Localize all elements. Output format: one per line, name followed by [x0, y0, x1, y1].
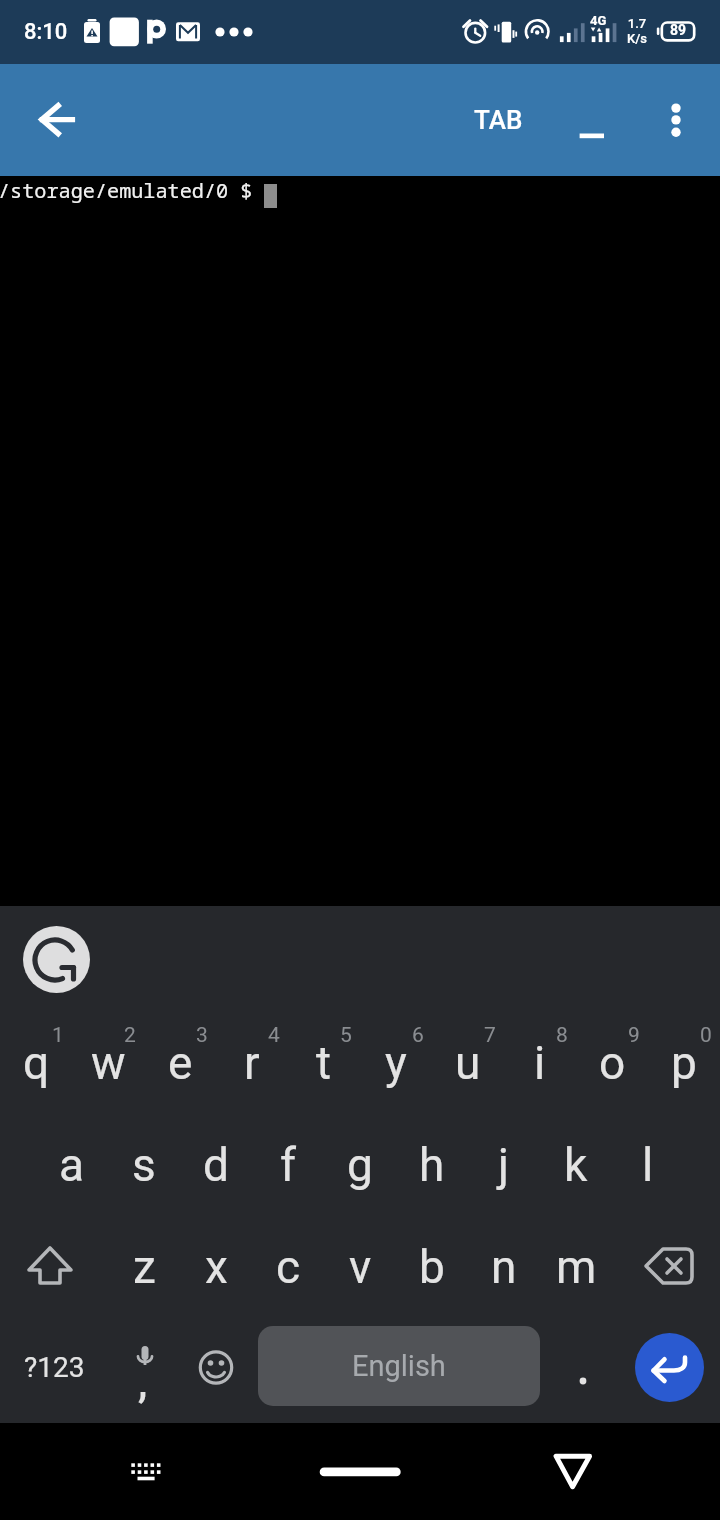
staticText: h: [419, 1138, 445, 1192]
staticText: q: [23, 1036, 50, 1090]
button[interactable]: v: [324, 1208, 396, 1310]
staticText: ?123: [24, 1351, 85, 1384]
button[interactable]: k: [540, 1106, 612, 1208]
staticText: 6: [400, 1023, 436, 1048]
button[interactable]: n: [468, 1208, 540, 1310]
staticText: 8: [544, 1023, 580, 1048]
staticText: k: [564, 1138, 588, 1192]
button[interactable]: Minimize: [562, 90, 624, 150]
button[interactable]: x: [180, 1208, 252, 1310]
button[interactable]: Back: [545, 1444, 601, 1506]
button[interactable]: c: [252, 1208, 324, 1310]
button[interactable]: More options: [645, 90, 707, 150]
button[interactable]: 1: [0, 1004, 72, 1106]
staticText: j: [498, 1138, 510, 1192]
button[interactable]: l: [612, 1106, 684, 1208]
button[interactable]: g: [324, 1106, 396, 1208]
button[interactable]: 9: [576, 1004, 648, 1106]
staticText: o: [599, 1036, 626, 1090]
button[interactable]: Backspace: [612, 1208, 720, 1310]
staticText: u: [455, 1036, 481, 1090]
button[interactable]: Grammarly keyboard: [23, 926, 90, 993]
staticText: p: [671, 1036, 697, 1090]
button[interactable]: Voice input: [108, 1308, 180, 1410]
staticText: 1.7 K/s: [623, 16, 651, 46]
staticText: 3: [184, 1023, 220, 1048]
button[interactable]: 4: [216, 1004, 288, 1106]
staticText: 1: [40, 1023, 76, 1048]
staticText: y: [385, 1036, 407, 1090]
staticText: d: [203, 1138, 229, 1192]
staticText: v: [349, 1240, 372, 1294]
button[interactable]: TAB: [450, 90, 546, 150]
button[interactable]: 7: [432, 1004, 504, 1106]
button[interactable]: English: [258, 1326, 540, 1406]
button[interactable]: z: [108, 1208, 180, 1310]
button[interactable]: Period: [548, 1308, 620, 1410]
button[interactable]: b: [396, 1208, 468, 1310]
button[interactable]: 8: [504, 1004, 576, 1106]
staticText: 8:10: [24, 19, 68, 45]
staticText: 4: [256, 1023, 292, 1048]
button[interactable]: m: [540, 1208, 612, 1310]
button[interactable]: Shift: [0, 1208, 108, 1310]
button[interactable]: 2: [72, 1004, 144, 1106]
staticText: s: [132, 1138, 156, 1192]
button[interactable]: Home: [312, 1460, 408, 1510]
button[interactable]: 6: [360, 1004, 432, 1106]
button[interactable]: Hide keyboard: [110, 1446, 182, 1508]
button[interactable]: a: [36, 1106, 108, 1208]
button[interactable]: 3: [144, 1004, 216, 1106]
button[interactable]: 0: [648, 1004, 720, 1106]
staticText: b: [419, 1240, 445, 1294]
staticText: 9: [616, 1023, 652, 1048]
button[interactable]: 5: [288, 1004, 360, 1106]
staticText: m: [556, 1240, 597, 1294]
button[interactable]: h: [396, 1106, 468, 1208]
staticText: 7: [472, 1023, 508, 1048]
button[interactable]: ?123: [0, 1316, 108, 1418]
staticText: 4G: [590, 13, 607, 28]
button[interactable]: j: [468, 1106, 540, 1208]
staticText: 2: [112, 1023, 148, 1048]
staticText: a: [59, 1138, 85, 1192]
staticText: 89: [664, 22, 692, 38]
staticText: c: [276, 1240, 301, 1294]
button[interactable]: d: [180, 1106, 252, 1208]
staticText: TAB: [474, 105, 523, 135]
staticText: z: [133, 1240, 156, 1294]
staticText: English: [352, 1349, 446, 1383]
button[interactable]: s: [108, 1106, 180, 1208]
staticText: f: [280, 1138, 296, 1192]
staticText: n: [491, 1240, 517, 1294]
staticText: t: [316, 1036, 332, 1090]
staticText: 5: [328, 1023, 364, 1048]
staticText: l: [642, 1138, 654, 1192]
button[interactable]: Emoji: [180, 1308, 252, 1410]
button[interactable]: f: [252, 1106, 324, 1208]
staticText: e: [168, 1036, 193, 1090]
staticText: 0: [688, 1023, 720, 1048]
staticText: g: [347, 1138, 373, 1192]
button[interactable]: Back: [12, 88, 76, 152]
staticText: x: [205, 1240, 228, 1294]
staticText: ,: [138, 1358, 148, 1407]
button[interactable]: Enter: [635, 1333, 704, 1402]
staticText: /storage/emulated/0 $: [0, 176, 253, 204]
staticText: i: [534, 1036, 546, 1090]
staticText: w: [91, 1036, 126, 1090]
staticText: r: [244, 1036, 260, 1090]
